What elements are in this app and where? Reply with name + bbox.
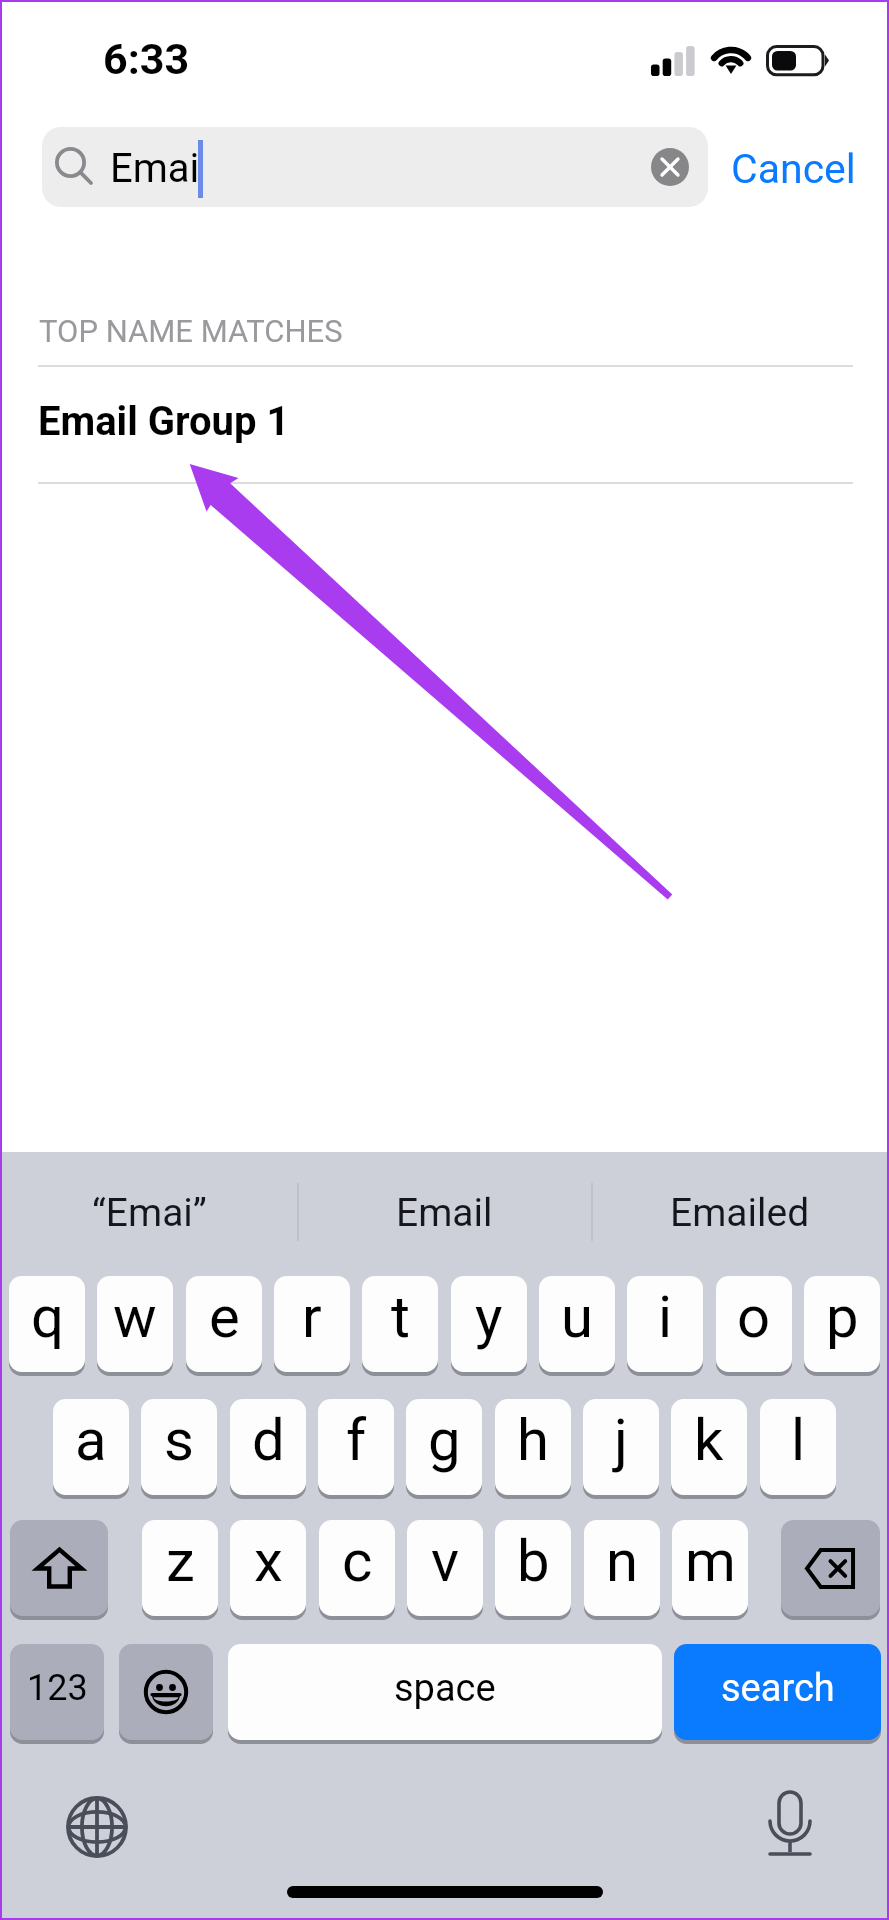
staticText: Cancel <box>731 145 856 193</box>
button[interactable]: k <box>671 1399 747 1495</box>
button[interactable]: b <box>495 1520 571 1616</box>
button[interactable]: w <box>97 1276 173 1372</box>
button[interactable]: f <box>318 1399 394 1495</box>
staticText: Emai <box>110 145 200 192</box>
staticText: “Emai” <box>92 1190 207 1236</box>
staticText: b <box>517 1527 550 1595</box>
staticText: Email <box>396 1190 493 1236</box>
button[interactable]: i <box>627 1276 703 1372</box>
staticText: 6:33 <box>103 34 190 84</box>
button[interactable]: p <box>804 1276 880 1372</box>
button[interactable]: l <box>760 1399 836 1495</box>
button[interactable]: Shift <box>10 1520 108 1616</box>
staticText: q <box>31 1283 64 1351</box>
button[interactable]: v <box>407 1520 483 1616</box>
button[interactable]: r <box>274 1276 350 1372</box>
staticText: p <box>826 1283 859 1351</box>
staticText: h <box>517 1406 549 1474</box>
button[interactable]: m <box>672 1520 748 1616</box>
button[interactable]: Backspace <box>781 1520 880 1616</box>
button[interactable]: Emoji <box>119 1644 213 1740</box>
staticText: m <box>685 1527 736 1595</box>
button[interactable]: “Emai” <box>2 1152 297 1274</box>
button[interactable]: Emai <box>42 127 708 207</box>
button[interactable]: t <box>362 1276 438 1372</box>
staticText: g <box>428 1406 461 1474</box>
staticText: space <box>394 1666 496 1711</box>
staticText: x <box>254 1527 283 1595</box>
staticText: 123 <box>27 1667 88 1709</box>
staticText: d <box>252 1406 285 1474</box>
staticText: w <box>113 1283 157 1351</box>
button[interactable]: q <box>9 1276 85 1372</box>
staticText: e <box>209 1283 240 1351</box>
button[interactable]: a <box>53 1399 129 1495</box>
staticText: s <box>164 1406 194 1474</box>
button[interactable]: Dictate <box>758 1788 822 1864</box>
button[interactable]: d <box>230 1399 306 1495</box>
button[interactable]: g <box>406 1399 482 1495</box>
button[interactable]: Email Group 1 <box>2 367 887 482</box>
staticText: TOP NAME MATCHES <box>39 313 343 349</box>
staticText: j <box>614 1406 628 1474</box>
staticText: k <box>694 1406 724 1474</box>
button[interactable]: z <box>142 1520 218 1616</box>
staticText: l <box>791 1406 806 1474</box>
button[interactable]: n <box>584 1520 660 1616</box>
staticText: search <box>721 1666 835 1711</box>
staticText: v <box>431 1527 460 1595</box>
button[interactable]: Emailed <box>592 1152 887 1274</box>
staticText: Emailed <box>670 1190 810 1236</box>
button[interactable]: y <box>451 1276 527 1372</box>
button[interactable]: space <box>228 1644 662 1740</box>
staticText: r <box>302 1283 322 1351</box>
button[interactable]: Cancel <box>717 129 870 209</box>
staticText: f <box>346 1406 367 1474</box>
staticText: t <box>391 1283 410 1351</box>
button[interactable]: u <box>539 1276 615 1372</box>
staticText: u <box>561 1283 593 1351</box>
button[interactable]: s <box>141 1399 217 1495</box>
button[interactable]: Clear text <box>651 148 689 186</box>
button[interactable]: Email <box>297 1152 592 1274</box>
staticText: Email Group 1 <box>38 398 290 445</box>
staticText: n <box>606 1527 639 1595</box>
button[interactable]: 123 <box>10 1644 104 1740</box>
button[interactable]: e <box>186 1276 262 1372</box>
button[interactable]: x <box>230 1520 306 1616</box>
button[interactable]: search <box>674 1644 881 1740</box>
staticText: y <box>475 1283 503 1351</box>
button[interactable]: Change keyboard <box>65 1795 129 1859</box>
staticText: a <box>75 1406 107 1474</box>
button[interactable]: c <box>319 1520 395 1616</box>
staticText: z <box>166 1527 195 1595</box>
staticText: i <box>658 1283 673 1351</box>
button[interactable]: o <box>716 1276 792 1372</box>
button[interactable]: j <box>583 1399 659 1495</box>
staticText: o <box>737 1283 771 1351</box>
button[interactable]: h <box>495 1399 571 1495</box>
staticText: c <box>342 1527 373 1595</box>
